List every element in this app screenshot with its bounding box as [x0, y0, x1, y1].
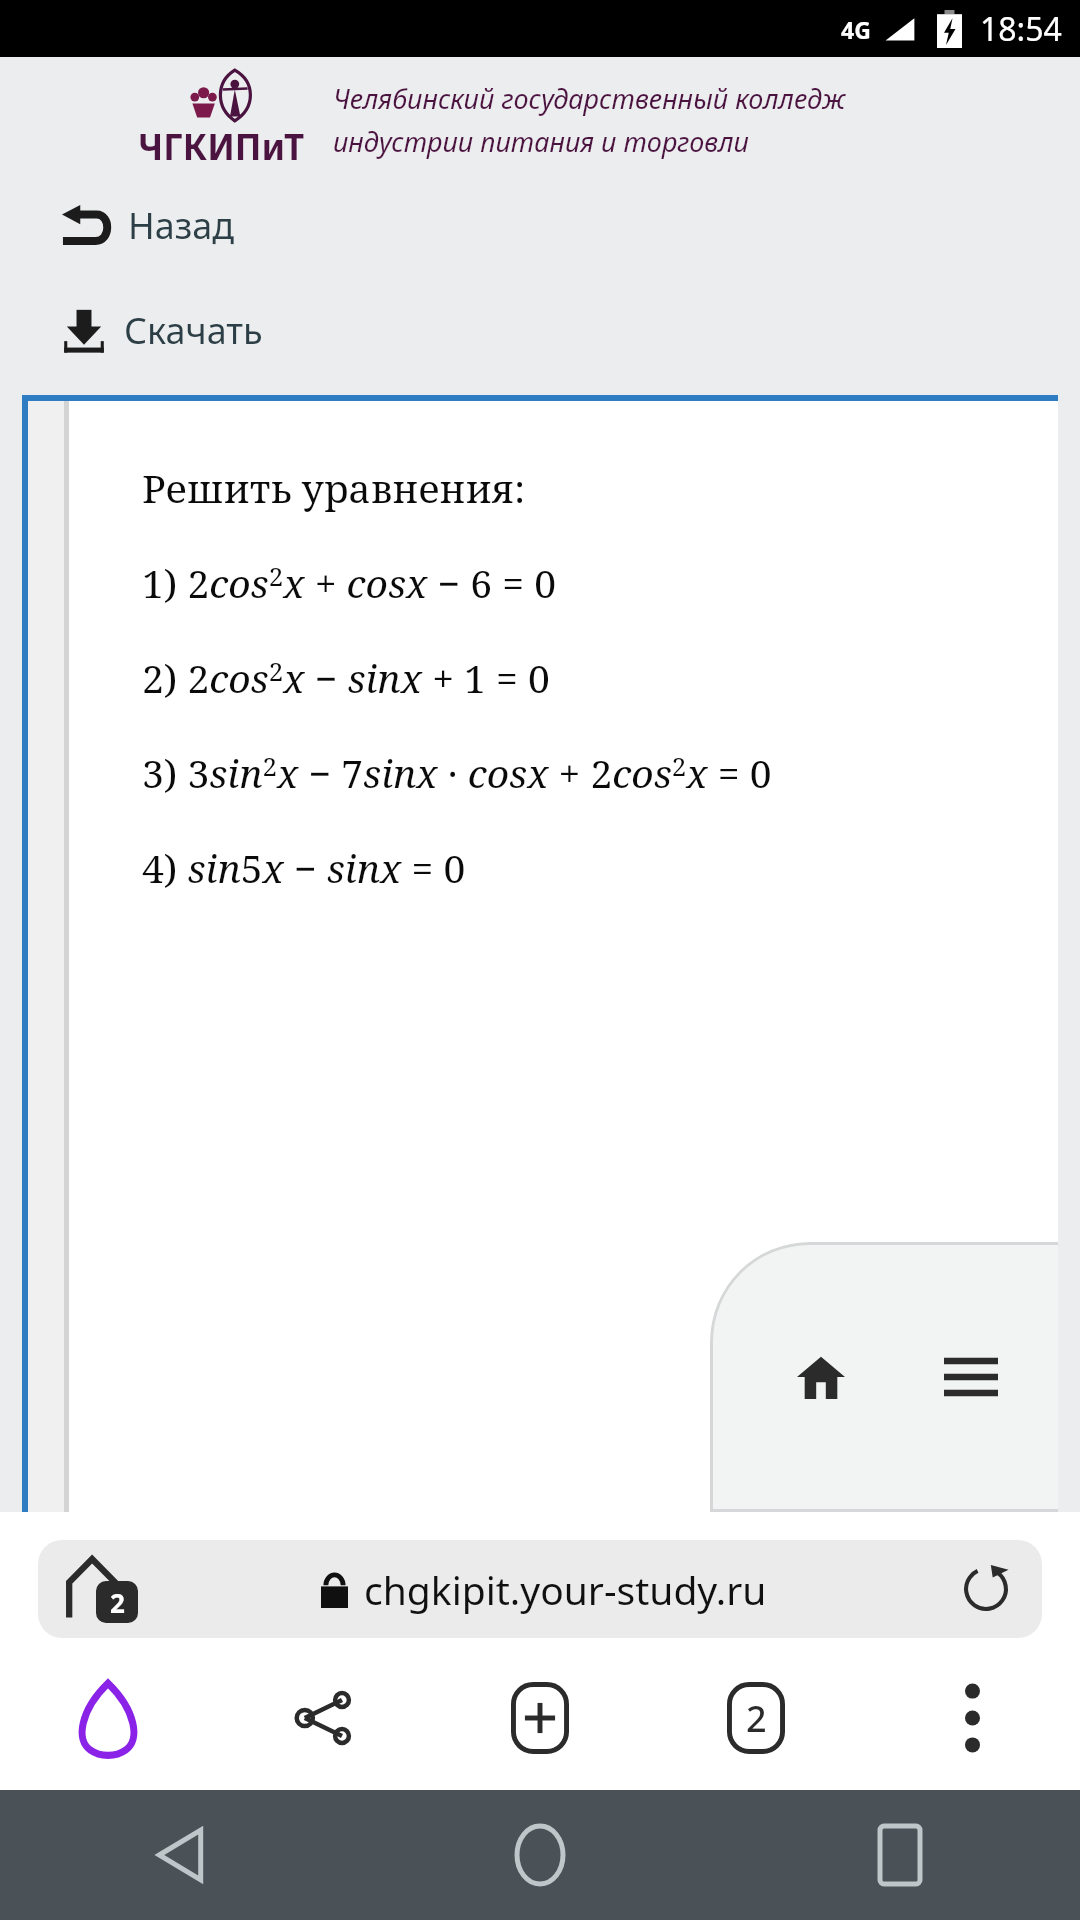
button[interactable]: Share: [216, 1662, 432, 1774]
other: Назад: [62, 204, 110, 248]
button[interactable]: Home: [360, 1790, 720, 1920]
other: Скачать: [62, 308, 106, 354]
button[interactable]: Home: [0, 1662, 216, 1774]
staticText: 3) 3sin2x − 7sinx · cosx + 2cos2x = 0: [142, 746, 772, 799]
staticText: ЧГКИПиТ: [138, 123, 305, 171]
staticText: chgkipit.your-study.ru: [364, 1563, 767, 1616]
staticText: 4) sin5x − sinx = 0: [142, 841, 466, 894]
staticText: Скачать: [124, 306, 263, 355]
button[interactable]: 2: [38, 1540, 1042, 1638]
button[interactable]: Назад: [0, 195, 1080, 256]
button[interactable]: Menu: [919, 1325, 1023, 1429]
button[interactable]: More options: [864, 1662, 1080, 1774]
staticText: 1) 2cos2x + cosx − 6 = 0: [142, 556, 556, 609]
staticText: индустрии питания и торговли: [333, 123, 749, 160]
button[interactable]: Скачать: [0, 300, 1080, 361]
staticText: 2: [746, 1694, 767, 1743]
staticText: 2: [110, 1585, 125, 1620]
button[interactable]: New tab: [432, 1662, 648, 1774]
staticText: Назад: [128, 201, 235, 250]
staticText: 2) 2cos2x − sinx + 1 = 0: [142, 651, 550, 704]
staticText: Решить уравнения:: [142, 461, 526, 514]
button[interactable]: Reload: [950, 1553, 1022, 1625]
button[interactable]: Back: [0, 1790, 360, 1920]
staticText: 4G: [841, 14, 871, 45]
button[interactable]: Tabs: [648, 1662, 864, 1774]
staticText: Челябинский государственный колледж: [333, 80, 846, 117]
button[interactable]: Recents: [720, 1790, 1080, 1920]
staticText: 18:54: [980, 7, 1062, 51]
button[interactable]: Home: [769, 1325, 873, 1429]
